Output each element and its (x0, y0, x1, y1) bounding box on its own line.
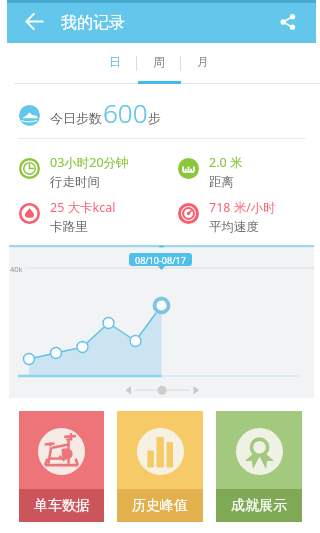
staticText: 成就展示 (231, 497, 287, 515)
button[interactable]: 单车数据 (19, 411, 104, 522)
staticText: 25 大卡kcal (50, 199, 116, 216)
staticText: 718 米/小时 (209, 199, 276, 216)
button[interactable]: 周 (137, 43, 181, 84)
staticText: 08/10-08/17 (135, 254, 186, 266)
staticText: 卡路里 (50, 219, 88, 235)
button[interactable]: 历史峰值 (117, 411, 203, 522)
staticText: 距离 (209, 174, 234, 190)
button[interactable]: Previous (120, 381, 136, 397)
staticText: 今日步数 (50, 110, 102, 126)
button[interactable]: 718 米/小时 (178, 202, 318, 244)
button[interactable]: 月 (181, 43, 225, 84)
staticText: 行走时间 (50, 174, 100, 190)
button[interactable]: 03小时20分钟 (19, 157, 159, 199)
button[interactable]: Back (12, 0, 56, 43)
staticText: 周 (153, 54, 165, 69)
staticText: 历史峰值 (132, 497, 188, 515)
button[interactable]: Next (187, 381, 203, 397)
button[interactable]: Share (266, 0, 310, 43)
staticText: 步 (148, 110, 161, 126)
button[interactable]: 成就展示 (216, 411, 302, 522)
button[interactable]: 25 大卡kcal (19, 202, 159, 244)
staticText: 40k (10, 264, 23, 274)
staticText: 日 (109, 54, 121, 69)
staticText: 2.0 米 (209, 154, 243, 171)
button[interactable]: 日 (93, 43, 137, 84)
staticText: 平均速度 (209, 219, 259, 235)
staticText: 03小时20分钟 (50, 154, 129, 171)
button[interactable]: 2.0 米 (178, 157, 318, 199)
staticText: 月 (197, 54, 209, 69)
staticText: 600 (103, 95, 148, 130)
staticText: 单车数据 (34, 497, 90, 515)
staticText: 我的记录 (61, 13, 125, 33)
